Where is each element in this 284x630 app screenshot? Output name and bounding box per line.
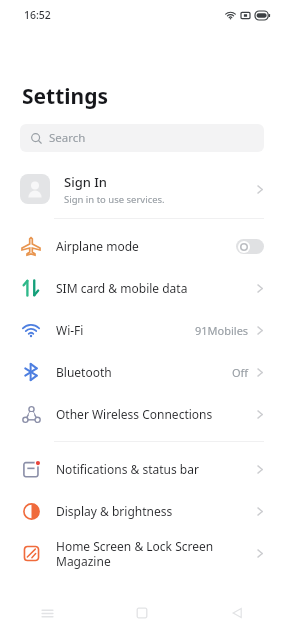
staticText: Off xyxy=(232,365,249,380)
button[interactable]: SIM card & mobile data xyxy=(0,267,284,309)
button[interactable]: Search xyxy=(20,124,264,152)
staticText: Home Screen & Lock Screen Magazine xyxy=(56,538,256,569)
button[interactable]: Airplane mode xyxy=(0,225,284,267)
staticText: Sign in to use services. xyxy=(64,193,165,206)
staticText: Sign In xyxy=(64,173,108,191)
button[interactable]: Home Screen & Lock Screen Magazine xyxy=(0,532,284,574)
button[interactable]: Notifications & status bar xyxy=(0,448,284,490)
staticText: Wi-Fi xyxy=(56,322,195,338)
staticText: Notifications & status bar xyxy=(56,461,256,477)
staticText: Search xyxy=(49,130,86,146)
button[interactable]: Airplane mode toggle xyxy=(236,239,264,254)
staticText: Bluetooth xyxy=(56,364,232,380)
staticText: Airplane mode xyxy=(56,238,236,254)
staticText: 16:52 xyxy=(24,8,51,22)
button[interactable]: Recent apps xyxy=(0,596,94,630)
staticText: Settings xyxy=(22,82,109,111)
staticText: 91Mobiles xyxy=(195,323,249,338)
button[interactable]: Sign In xyxy=(0,166,284,212)
button[interactable]: Display & brightness xyxy=(0,490,284,532)
staticText: SIM card & mobile data xyxy=(56,280,256,296)
button[interactable]: Other Wireless Connections xyxy=(0,393,284,435)
button[interactable]: Wi-Fi xyxy=(0,309,284,351)
button[interactable]: Bluetooth xyxy=(0,351,284,393)
staticText: Display & brightness xyxy=(56,503,256,519)
staticText: Other Wireless Connections xyxy=(56,406,256,422)
